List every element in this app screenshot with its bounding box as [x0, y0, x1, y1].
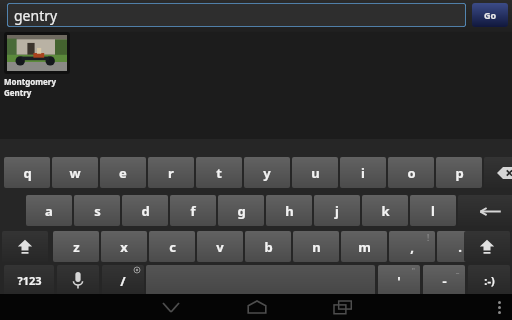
button[interactable]: !	[389, 231, 435, 262]
staticText: u	[311, 164, 320, 182]
button[interactable]: More options	[486, 294, 512, 320]
button[interactable]: b	[245, 231, 291, 262]
staticText: e	[119, 164, 127, 182]
staticText: v	[216, 238, 224, 256]
button[interactable]: _	[423, 265, 465, 296]
staticText: b	[264, 238, 273, 256]
staticText: d	[141, 202, 150, 220]
staticText: j	[335, 202, 339, 220]
staticText: gentry	[14, 6, 58, 25]
button[interactable]: d	[122, 195, 168, 226]
button[interactable]: /	[102, 265, 144, 296]
button[interactable]: f	[170, 195, 216, 226]
button[interactable]: x	[101, 231, 147, 262]
staticText: o	[407, 164, 416, 182]
staticText: !	[427, 232, 430, 243]
button[interactable]: ?	[437, 231, 483, 262]
staticText: h	[285, 202, 294, 220]
staticText: t	[216, 164, 222, 182]
button[interactable]: Home	[236, 294, 278, 320]
button[interactable]: a	[26, 195, 72, 226]
staticText: ?123	[17, 273, 42, 288]
button[interactable]: Go	[472, 3, 508, 27]
staticText: c	[169, 238, 176, 256]
button[interactable]: Voice input	[57, 265, 99, 296]
button[interactable]: v	[197, 231, 243, 262]
staticText: g	[237, 202, 246, 220]
button[interactable]: ?123	[4, 265, 54, 296]
button[interactable]: z	[53, 231, 99, 262]
button[interactable]: Enter	[458, 195, 512, 226]
staticText: "	[412, 266, 415, 276]
button[interactable]: u	[292, 157, 338, 188]
button[interactable]: gentry	[7, 3, 466, 27]
button[interactable]: s	[74, 195, 120, 226]
staticText: n	[312, 238, 321, 256]
button[interactable]: l	[410, 195, 456, 226]
button[interactable]: h	[266, 195, 312, 226]
button[interactable]: "	[378, 265, 420, 296]
button[interactable]: k	[362, 195, 408, 226]
button[interactable]: Shift	[464, 231, 510, 262]
staticText: _	[456, 266, 460, 276]
staticText: y	[263, 164, 271, 182]
button[interactable]: Hide keyboard	[150, 294, 192, 320]
button[interactable]: c	[149, 231, 195, 262]
staticText: p	[455, 164, 464, 182]
staticText: w	[69, 164, 81, 182]
staticText: m	[358, 238, 371, 256]
button[interactable]: o	[388, 157, 434, 188]
staticText: Go	[484, 9, 497, 21]
staticText: /	[120, 272, 126, 290]
staticText: :-)	[484, 273, 495, 288]
button[interactable]	[4, 32, 70, 74]
button[interactable]: Backspace	[484, 157, 512, 188]
button[interactable]: m	[341, 231, 387, 262]
staticText: Montgomery Gentry	[4, 76, 76, 98]
button[interactable]: Shift	[2, 231, 48, 262]
staticText: i	[361, 164, 365, 182]
staticText: ,	[410, 238, 414, 256]
staticText: l	[431, 202, 435, 220]
button[interactable]: n	[293, 231, 339, 262]
button[interactable]: w	[52, 157, 98, 188]
staticText: x	[120, 238, 128, 256]
staticText: r	[168, 164, 174, 182]
button[interactable]: p	[436, 157, 482, 188]
button[interactable]: Emoticons	[468, 265, 510, 296]
staticText: f	[190, 202, 196, 220]
button[interactable]: i	[340, 157, 386, 188]
staticText: z	[73, 238, 80, 256]
button[interactable]: Recent apps	[322, 294, 364, 320]
staticText: -	[442, 272, 447, 290]
staticText: s	[94, 202, 101, 220]
button[interactable]: q	[4, 157, 50, 188]
button[interactable]: j	[314, 195, 360, 226]
button[interactable]: Space	[146, 265, 375, 296]
button[interactable]: g	[218, 195, 264, 226]
button[interactable]: r	[148, 157, 194, 188]
staticText: '	[397, 272, 401, 290]
button[interactable]: t	[196, 157, 242, 188]
button[interactable]: e	[100, 157, 146, 188]
staticText: k	[381, 202, 390, 220]
staticText: q	[23, 164, 32, 182]
staticText: .	[458, 238, 462, 256]
staticText: a	[45, 202, 53, 220]
button[interactable]: y	[244, 157, 290, 188]
